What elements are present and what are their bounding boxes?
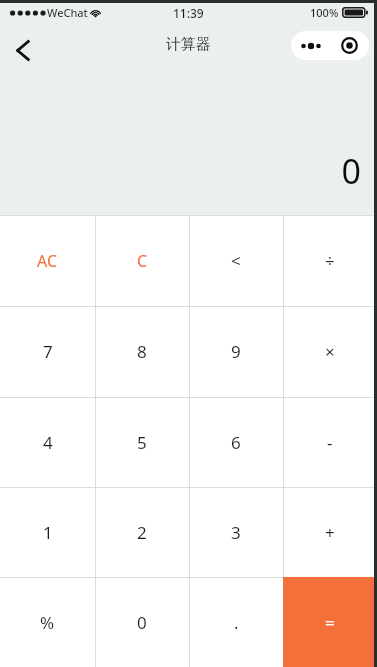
button[interactable]: < bbox=[189, 215, 283, 306]
staticText: 5 bbox=[137, 431, 147, 454]
button[interactable]: More options bbox=[291, 31, 369, 60]
staticText: WeChat bbox=[47, 5, 88, 20]
staticText: 0 bbox=[341, 148, 361, 194]
button[interactable]: More options bbox=[293, 31, 329, 60]
staticText: < bbox=[231, 249, 241, 272]
button[interactable]: Close bbox=[331, 31, 367, 60]
staticText: 9 bbox=[231, 340, 241, 363]
staticText: - bbox=[327, 431, 333, 454]
button[interactable]: 0 bbox=[95, 577, 189, 667]
button[interactable]: ÷ bbox=[283, 215, 377, 306]
staticText: 计算器 bbox=[166, 35, 211, 54]
staticText: . bbox=[234, 611, 239, 634]
staticText: + bbox=[325, 521, 335, 544]
staticText: × bbox=[325, 340, 335, 363]
button[interactable]: 6 bbox=[189, 397, 283, 487]
staticText: 2 bbox=[137, 521, 147, 544]
staticText: 0 bbox=[137, 611, 147, 634]
button[interactable]: - bbox=[283, 397, 377, 487]
staticText: 8 bbox=[137, 340, 147, 363]
staticText: 1 bbox=[43, 521, 53, 544]
button[interactable]: 3 bbox=[189, 487, 283, 577]
staticText: ÷ bbox=[325, 249, 335, 272]
button[interactable]: × bbox=[283, 306, 377, 397]
staticText: = bbox=[325, 611, 335, 634]
button[interactable]: C bbox=[95, 215, 189, 306]
staticText: 11:39 bbox=[173, 5, 204, 21]
button[interactable]: . bbox=[189, 577, 283, 667]
button[interactable]: Back bbox=[1, 28, 45, 72]
staticText: AC bbox=[37, 250, 58, 272]
staticText: 4 bbox=[43, 431, 53, 454]
button[interactable]: 1 bbox=[0, 487, 95, 577]
button[interactable]: 8 bbox=[95, 306, 189, 397]
staticText: 7 bbox=[43, 340, 53, 363]
button[interactable]: AC bbox=[0, 215, 95, 306]
button[interactable]: = bbox=[283, 577, 377, 667]
button[interactable]: 4 bbox=[0, 397, 95, 487]
button[interactable]: 9 bbox=[189, 306, 283, 397]
button[interactable]: + bbox=[283, 487, 377, 577]
staticText: 3 bbox=[231, 521, 241, 544]
staticText: 6 bbox=[231, 431, 241, 454]
staticText: C bbox=[137, 250, 148, 272]
button[interactable]: 7 bbox=[0, 306, 95, 397]
staticText: 100% bbox=[310, 5, 339, 20]
staticText: % bbox=[40, 611, 55, 634]
button[interactable]: 5 bbox=[95, 397, 189, 487]
button[interactable]: 2 bbox=[95, 487, 189, 577]
button[interactable]: % bbox=[0, 577, 95, 667]
